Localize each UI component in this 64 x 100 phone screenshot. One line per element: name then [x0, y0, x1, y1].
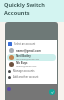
staticText: Neil Bailey	[16, 54, 31, 58]
staticText: name@gmail.com	[16, 49, 41, 53]
staticText: Quickly Switch Accounts	[4, 1, 45, 17]
button[interactable]: Neil Bailey	[7, 54, 56, 61]
button[interactable]: Confirm	[49, 89, 55, 95]
button[interactable]: Add another account	[6, 74, 57, 80]
staticText: neil.bailey@gmail.com	[16, 58, 40, 61]
staticText: Add another account	[13, 75, 39, 79]
staticText: Select an account	[14, 42, 36, 46]
staticText: Manage accounts	[13, 69, 35, 73]
button[interactable]: Manage accounts	[6, 68, 57, 74]
staticText: nbbuys@gmail.com	[16, 65, 37, 68]
button[interactable]: Nb Buys	[7, 61, 56, 68]
button[interactable]: name@gmail.com	[7, 47, 56, 54]
staticText: Nb Buys	[16, 61, 28, 65]
